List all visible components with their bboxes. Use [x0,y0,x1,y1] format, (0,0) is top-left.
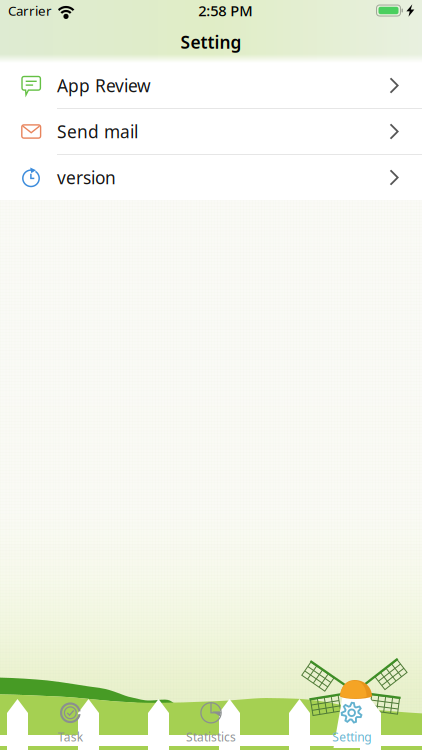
staticText: Carrier [8,2,52,19]
button[interactable]: Task [0,700,141,750]
staticText: Send mail [57,120,138,143]
staticText: App Review [57,74,151,97]
staticText: version [57,166,116,189]
staticText: Task [58,729,83,745]
button[interactable]: Statistics [141,700,281,750]
button[interactable]: Setting [281,700,422,750]
staticText: Statistics [186,729,236,745]
staticText: Setting [180,30,241,53]
staticText: 2:58 PM [198,1,252,20]
button[interactable]: version [0,155,422,200]
staticText: Setting [332,729,371,745]
button[interactable]: App Review [0,63,422,108]
button[interactable]: Send mail [0,109,422,154]
